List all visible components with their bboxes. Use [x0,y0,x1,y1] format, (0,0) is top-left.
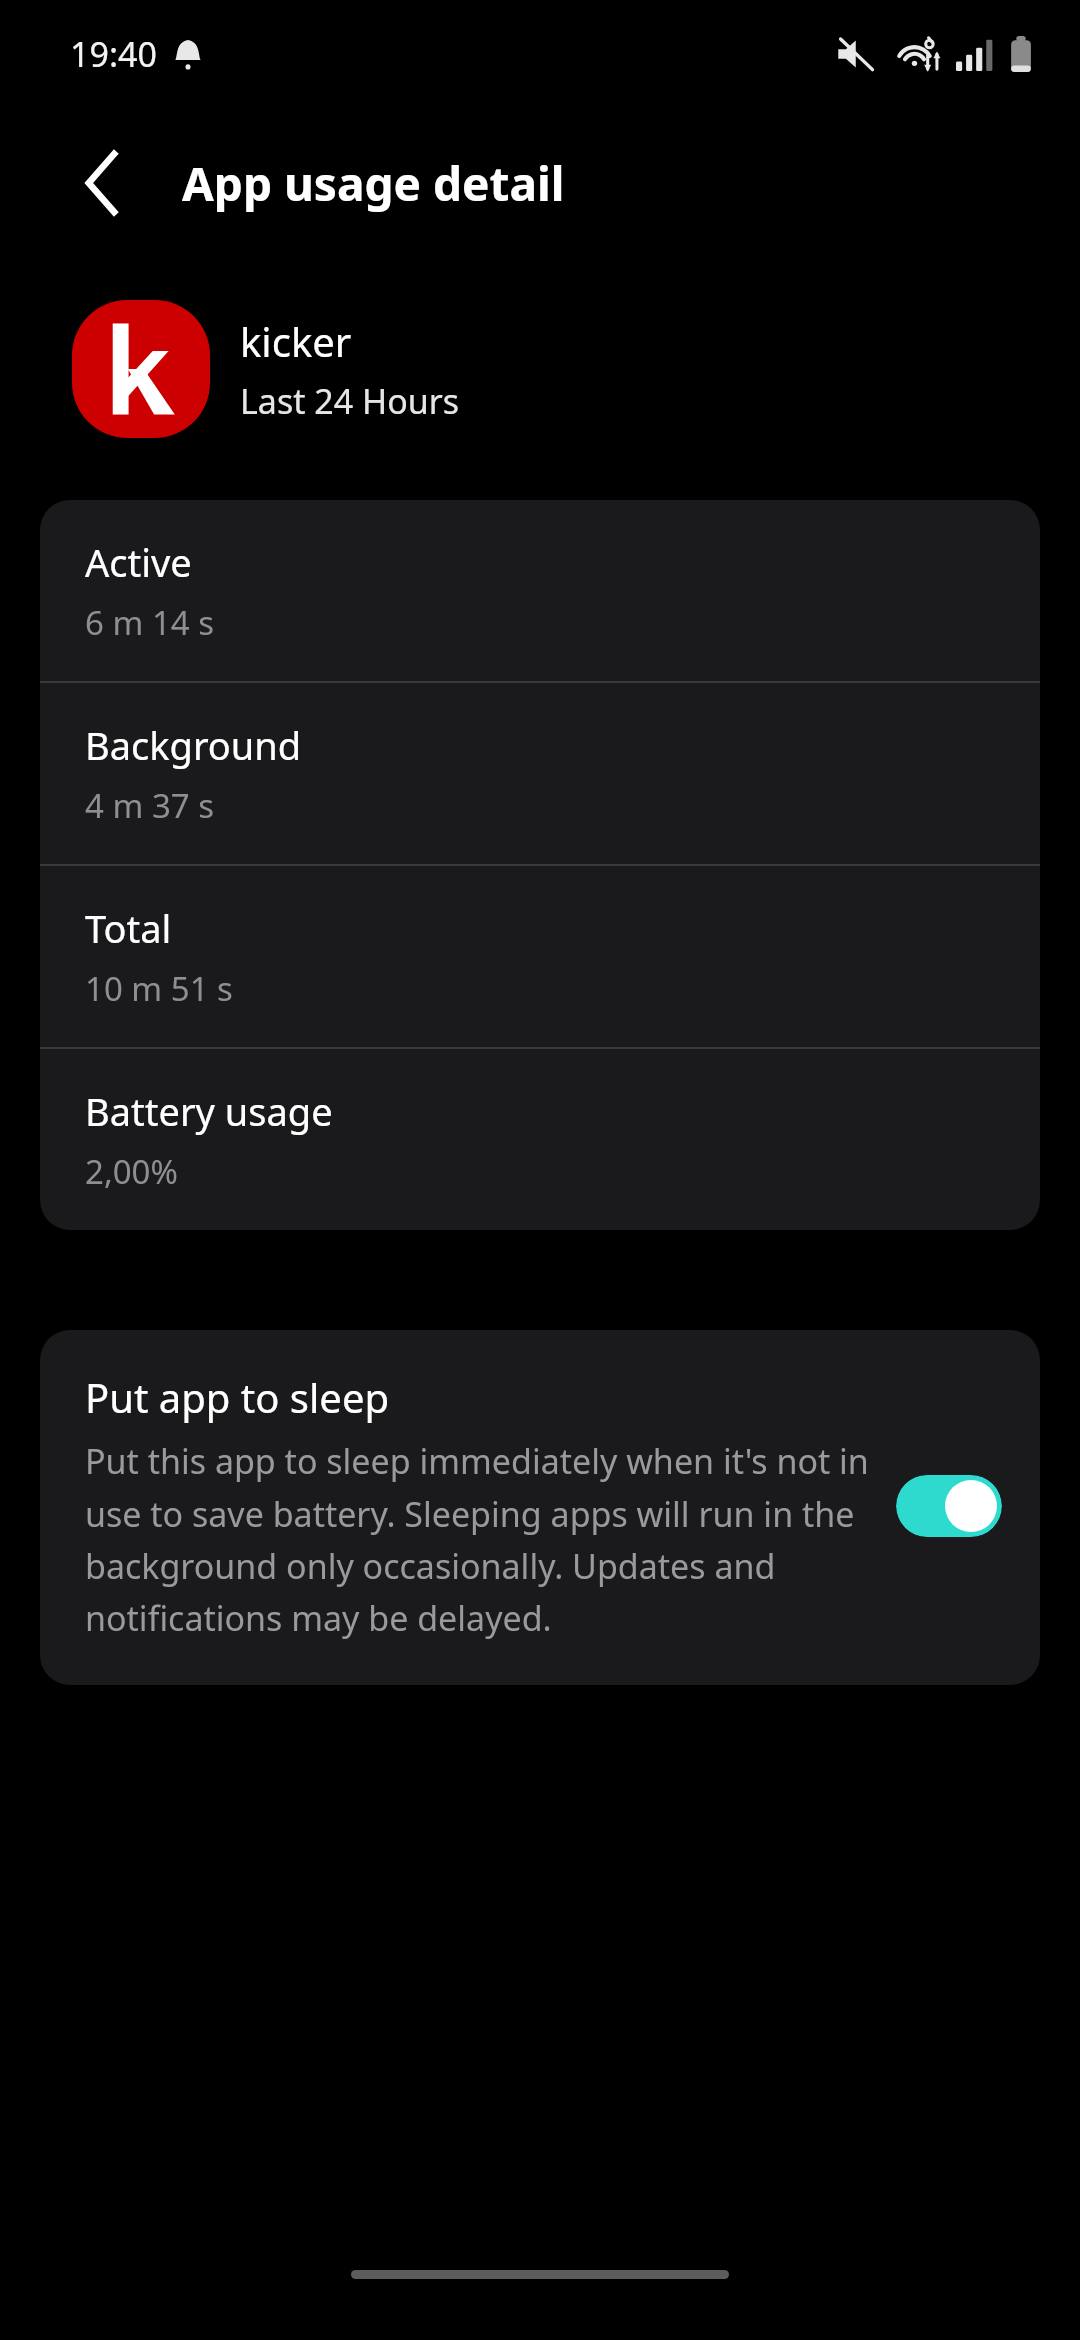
staticText: 19:40 [70,31,157,77]
button[interactable]: Put app to sleep [40,1330,1040,1685]
staticText: Last 24 Hours [240,378,460,424]
button[interactable]: Total [40,866,1040,1047]
staticText: kicker [240,314,352,368]
button[interactable]: Background [40,683,1040,864]
staticText: App usage detail [182,152,565,215]
staticText: Put this app to sleep immediately when i… [85,1438,872,1641]
staticText: Total [85,902,172,954]
staticText: Active [85,536,192,588]
button[interactable]: Active [40,500,1040,681]
staticText: 4 m 37 s [85,783,215,828]
button[interactable]: Back [58,140,144,226]
staticText: Battery usage [85,1085,333,1137]
staticText: Background [85,719,302,771]
button[interactable]: Battery usage [40,1049,1040,1230]
staticText: 6 m 14 s [85,600,215,645]
staticText: 10 m 51 s [85,966,233,1011]
button[interactable]: Put app to sleep toggle, on [896,1475,1002,1537]
staticText: 2,00% [85,1149,178,1194]
staticText: Put app to sleep [85,1370,390,1424]
